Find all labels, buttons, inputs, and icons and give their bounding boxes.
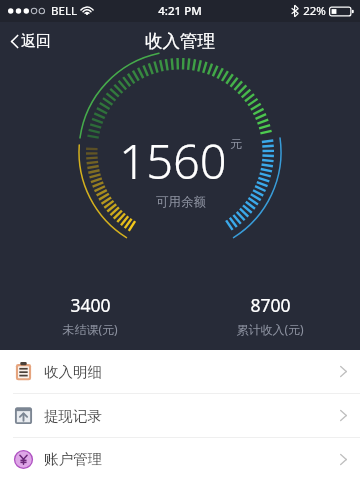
staticText: 8700 <box>250 293 291 317</box>
button[interactable]: 账户管理 <box>0 438 360 480</box>
staticText: 可用余额 <box>156 194 206 210</box>
staticText: 累计收入(元) <box>236 321 304 337</box>
other: Open 提现记录 <box>340 409 347 422</box>
staticText: 收入管理 <box>145 30 215 52</box>
button[interactable]: 3400 <box>0 286 180 343</box>
staticText: 账户管理 <box>44 450 102 468</box>
staticText: BELL <box>51 3 77 19</box>
button[interactable]: 收入明细 <box>0 350 360 393</box>
staticText: 元 <box>230 136 242 151</box>
staticText: 1560 <box>119 129 227 193</box>
staticText: 提现记录 <box>44 407 102 425</box>
other: Open 账户管理 <box>340 453 347 466</box>
staticText: 4:21 PM <box>158 3 202 19</box>
staticText: 收入明细 <box>44 363 102 381</box>
staticText: 返回 <box>21 32 51 51</box>
staticText: 22% <box>303 3 326 19</box>
button[interactable]: 提现记录 <box>0 394 360 437</box>
button[interactable]: 8700 <box>180 286 360 343</box>
button[interactable]: 返回 <box>0 25 63 58</box>
staticText: 未结课(元) <box>62 321 118 337</box>
other: Open 收入明细 <box>340 365 347 378</box>
staticText: 3400 <box>70 293 111 317</box>
